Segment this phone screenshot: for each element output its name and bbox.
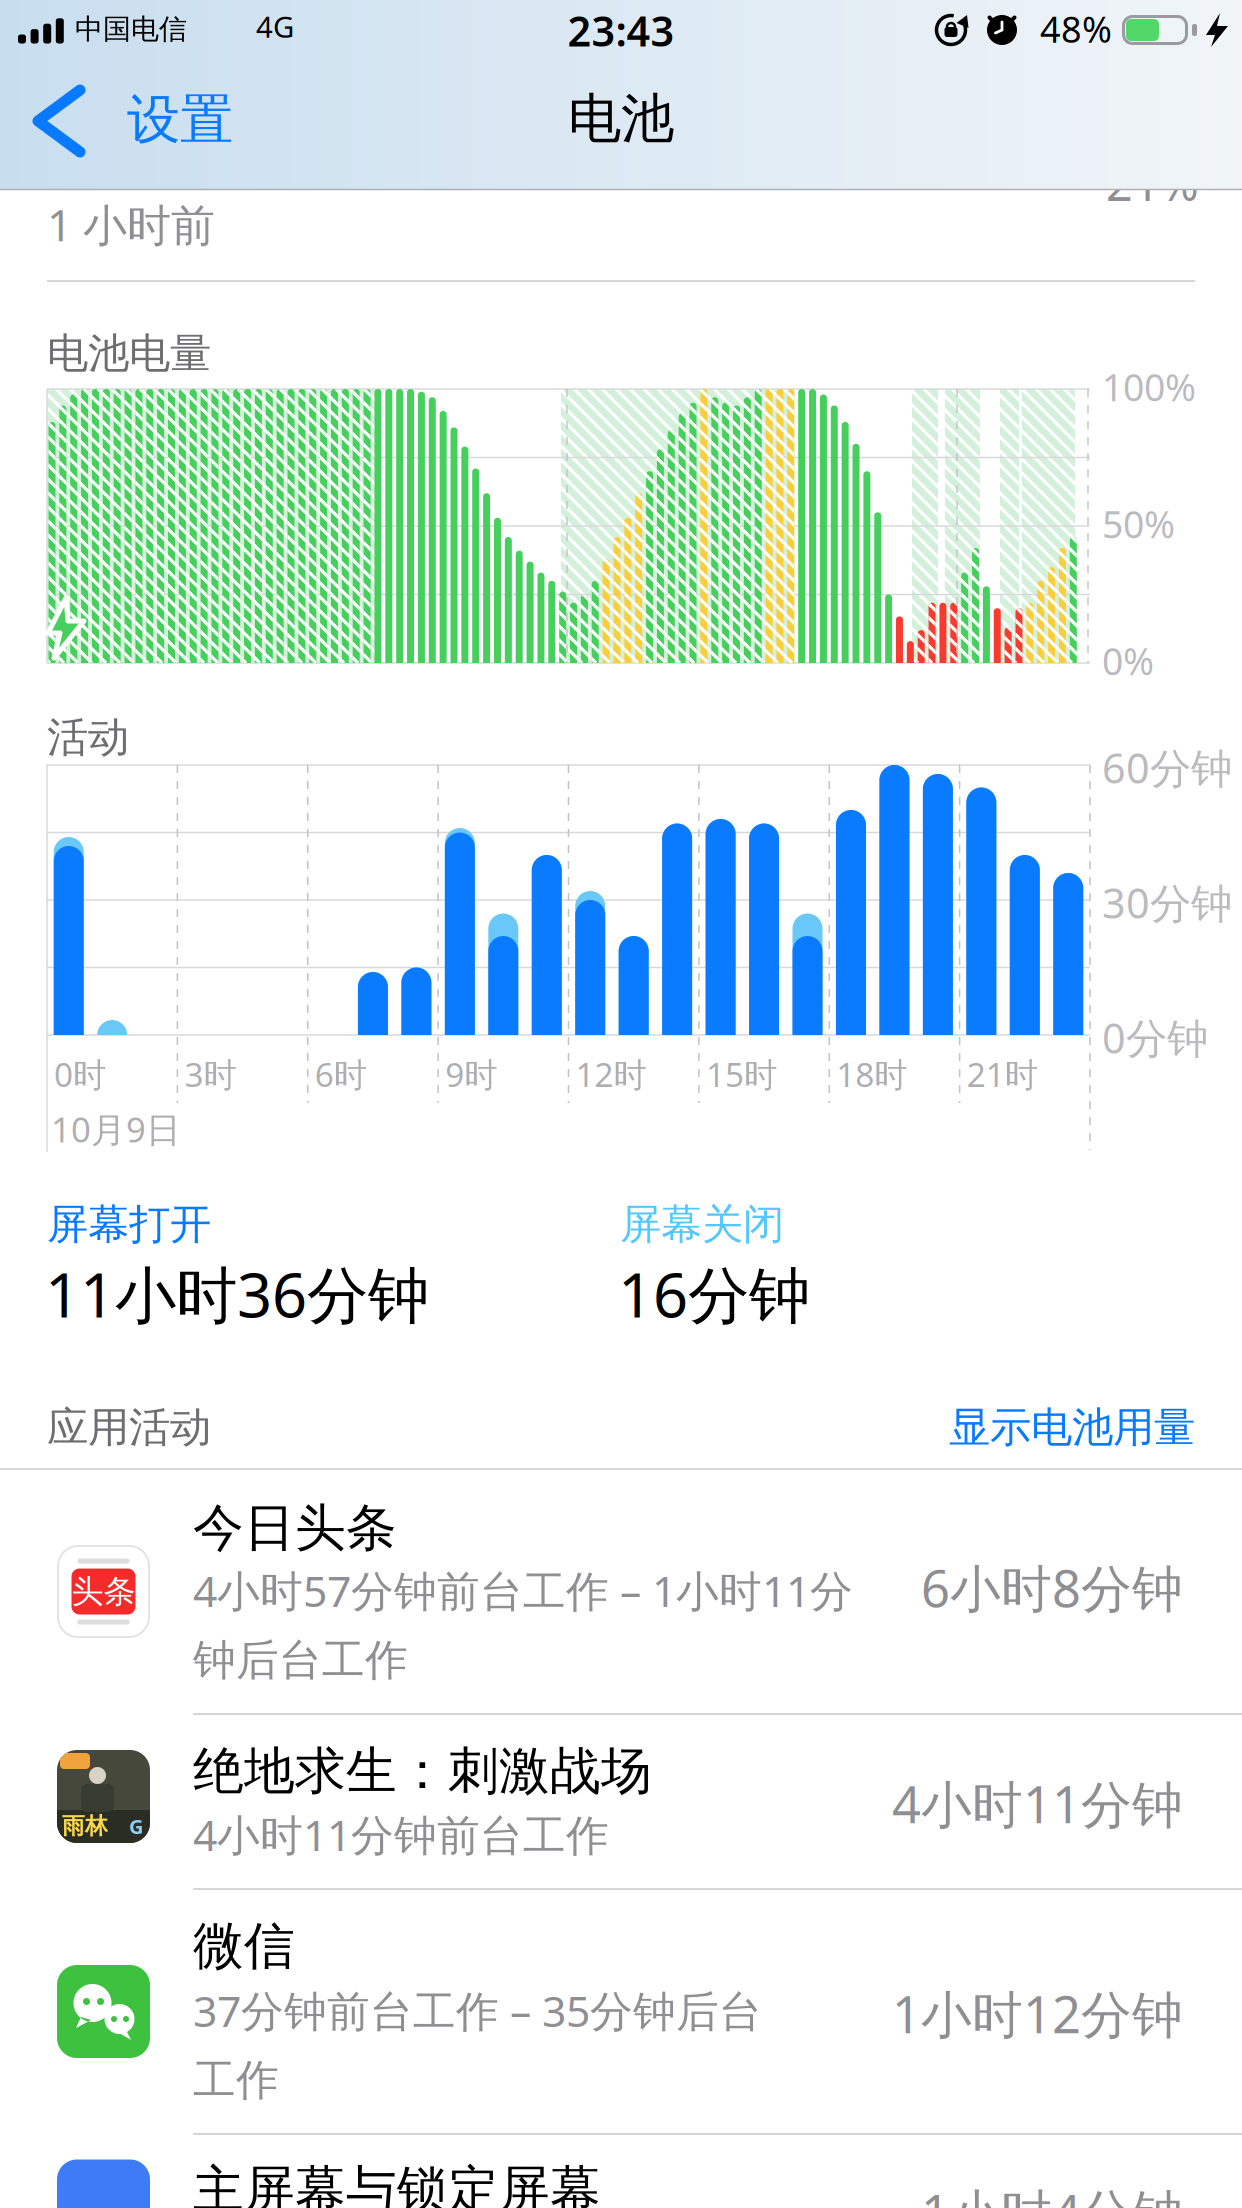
staticText: 100% bbox=[1102, 362, 1196, 412]
staticText: 4G bbox=[256, 7, 294, 46]
staticText: 电池电量 bbox=[47, 328, 211, 379]
staticText: 3时 bbox=[184, 1052, 236, 1096]
staticText: 4小时11分钟前台工作 bbox=[193, 1806, 609, 1863]
staticText: 21% bbox=[1106, 152, 1199, 214]
staticText: 11小时36分钟 bbox=[45, 1253, 429, 1334]
staticText: 50% bbox=[1102, 499, 1175, 549]
staticText: 1小时12分钟 bbox=[892, 1980, 1183, 2047]
staticText: 钟后台工作 bbox=[193, 1634, 408, 1686]
staticText: 15时 bbox=[706, 1052, 777, 1096]
staticText: 18时 bbox=[836, 1052, 907, 1096]
button[interactable]: 头条 bbox=[0, 1469, 1242, 1714]
button[interactable]: 设置 bbox=[0, 60, 260, 190]
staticText: G bbox=[129, 1813, 143, 1840]
staticText: 4小时57分钟前台工作 – 1小时11分 bbox=[193, 1562, 853, 1619]
staticText: 10月9日 bbox=[51, 1106, 181, 1152]
button[interactable]: 雨林 bbox=[0, 1714, 1242, 1889]
staticText: 16分钟 bbox=[618, 1253, 810, 1334]
staticText: 23:43 bbox=[567, 3, 674, 58]
staticText: 21时 bbox=[967, 1052, 1038, 1096]
staticText: 设置 bbox=[127, 87, 233, 152]
staticText: 0时 bbox=[54, 1052, 106, 1096]
staticText: 雨林 bbox=[62, 1812, 108, 1840]
staticText: 6时 bbox=[315, 1052, 367, 1096]
staticText: 1小时4分钟 bbox=[921, 2178, 1183, 2208]
staticText: 中国电信 bbox=[75, 12, 187, 46]
staticText: 屏幕打开 bbox=[47, 1199, 211, 1250]
staticText: 微信 bbox=[193, 1915, 295, 1977]
staticText: 活动 bbox=[47, 712, 129, 763]
staticText: 0分钟 bbox=[1102, 1010, 1208, 1065]
staticText: 9时 bbox=[445, 1052, 497, 1096]
staticText: 绝地求生：刺激战场 bbox=[193, 1740, 652, 1802]
staticText: 头条 bbox=[71, 1572, 135, 1611]
staticText: 0% bbox=[1102, 636, 1154, 686]
staticText: 今日头条 bbox=[193, 1497, 397, 1559]
staticText: 37分钟前台工作 – 35分钟后台 bbox=[193, 1982, 762, 2039]
staticText: 12时 bbox=[575, 1052, 646, 1096]
button[interactable]: 显示电池用量 bbox=[795, 1402, 1195, 1453]
button[interactable]: 微信 bbox=[0, 1889, 1242, 2134]
staticText: 屏幕关闭 bbox=[620, 1199, 784, 1250]
staticText: 4小时11分钟 bbox=[892, 1770, 1183, 1837]
staticText: 48% bbox=[1040, 5, 1112, 53]
staticText: 60分钟 bbox=[1102, 740, 1232, 795]
button[interactable]: 主屏幕与锁定屏幕 bbox=[0, 2134, 1242, 2208]
staticText: 应用活动 bbox=[47, 1402, 211, 1453]
staticText: 电池 bbox=[568, 86, 674, 151]
staticText: 1 小时前 bbox=[47, 195, 215, 253]
staticText: 6小时8分钟 bbox=[921, 1554, 1183, 1621]
staticText: 工作 bbox=[193, 2054, 279, 2106]
staticText: 显示电池用量 bbox=[949, 1402, 1195, 1453]
staticText: 30分钟 bbox=[1102, 875, 1232, 930]
staticText: 主屏幕与锁定屏幕 bbox=[193, 2158, 601, 2208]
